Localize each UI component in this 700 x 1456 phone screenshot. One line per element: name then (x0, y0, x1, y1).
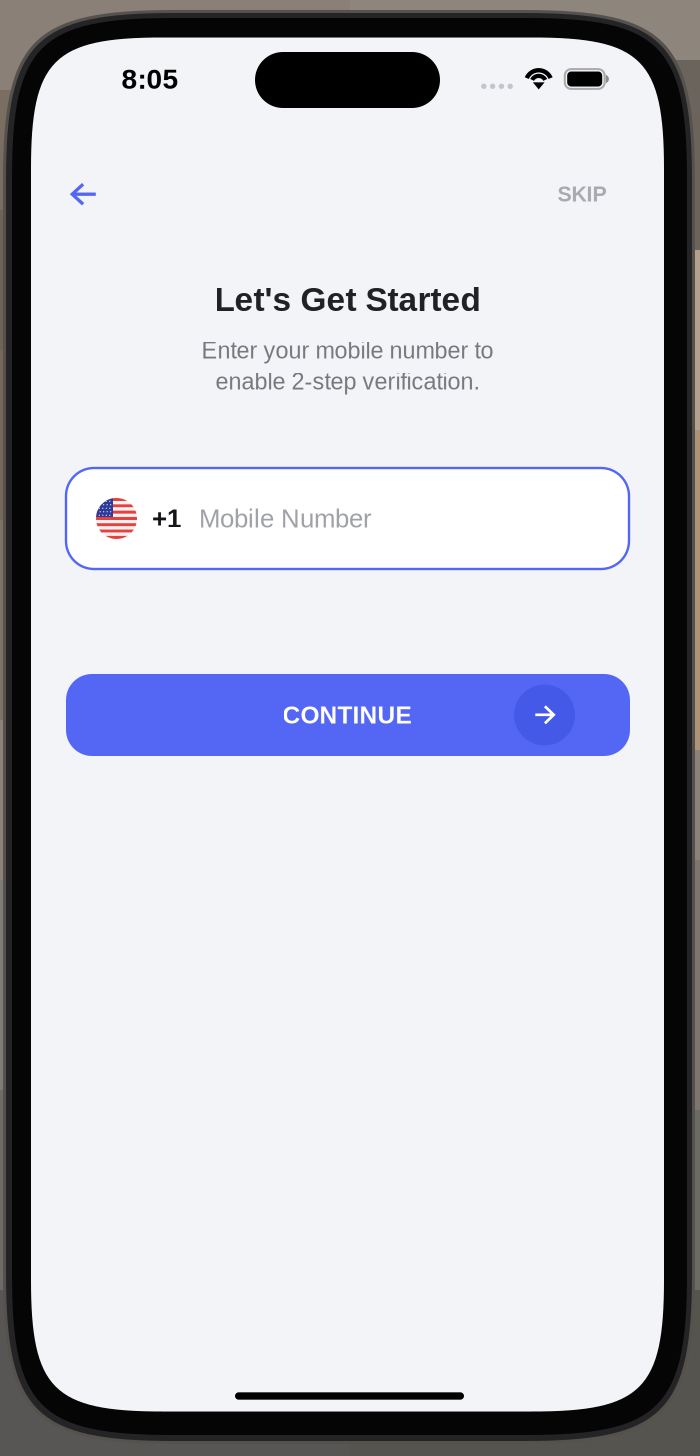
staticText: SKIP (557, 182, 606, 206)
staticText: +1 (152, 504, 181, 533)
staticText: Let's Get Started (214, 281, 480, 318)
button[interactable]: SKIP (537, 168, 627, 220)
staticText: Enter your mobile number to (201, 337, 493, 364)
button[interactable]: CONTINUE (66, 674, 630, 756)
staticText: enable 2-step verification. (215, 368, 479, 395)
staticText: 8:05 (121, 63, 178, 95)
staticText: Mobile Number (199, 504, 372, 533)
button[interactable]: Go back (54, 168, 114, 220)
staticText: CONTINUE (282, 701, 411, 729)
